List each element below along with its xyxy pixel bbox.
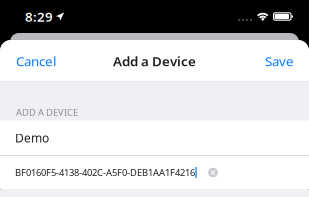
button[interactable]: Save (250, 40, 309, 82)
button[interactable]: BF0160F5-4138-402C-A5F0-DEB1AA1F4216 (0, 156, 309, 189)
button[interactable]: Demo (0, 120, 309, 155)
staticText: Demo (15, 130, 49, 146)
staticText: Add a Device (113, 52, 196, 70)
button[interactable]: Cancel (0, 40, 72, 82)
staticText: Cancel (16, 52, 56, 70)
staticText: Save (265, 52, 294, 70)
staticText: BF0160F5-4138-402C-A5F0-DEB1AA1F4216 (15, 166, 195, 179)
staticText: ADD A DEVICE (16, 106, 78, 118)
staticText: 8:29 (25, 8, 53, 25)
